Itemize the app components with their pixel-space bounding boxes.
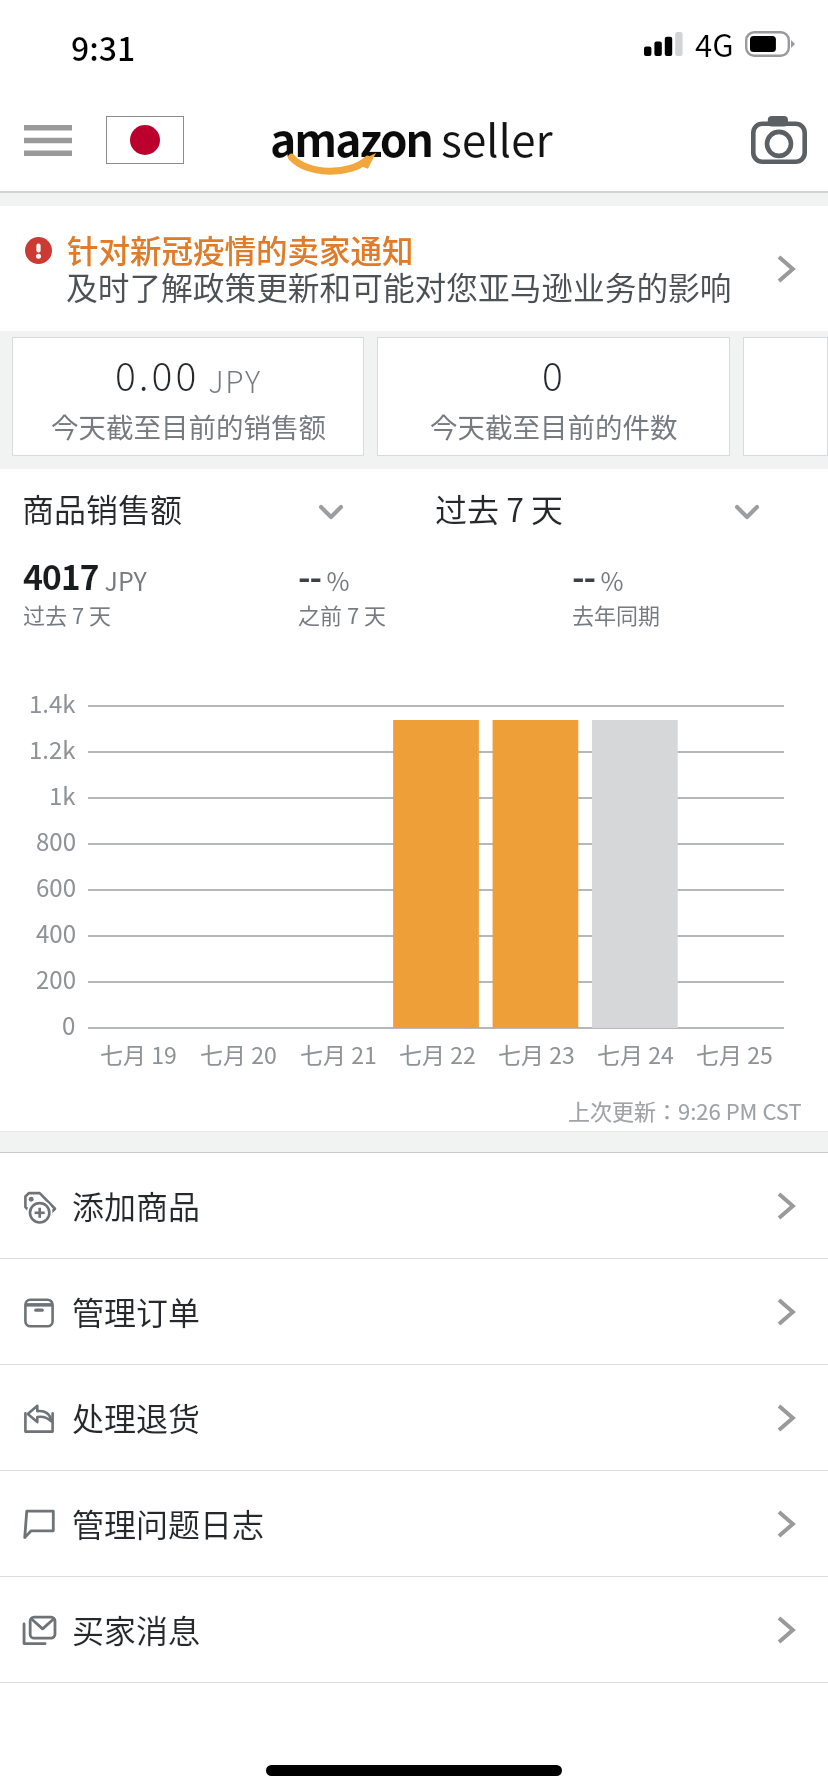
staticText: seller bbox=[441, 105, 553, 169]
staticText: -- bbox=[298, 551, 321, 600]
staticText: % bbox=[321, 562, 350, 598]
button[interactable]: 商品销售额 bbox=[0, 469, 367, 547]
staticText: 买家消息 bbox=[72, 1606, 201, 1652]
staticText: 200 bbox=[36, 961, 76, 996]
staticText: 0.00 bbox=[115, 346, 200, 402]
staticText: 处理退货 bbox=[72, 1394, 201, 1440]
staticText: 800 bbox=[36, 823, 76, 858]
staticText: 管理问题日志 bbox=[72, 1500, 265, 1546]
staticText: 管理订单 bbox=[72, 1288, 201, 1334]
staticText: 今天截至目前的销售额 bbox=[51, 406, 326, 446]
staticText: 七月 24 bbox=[597, 1037, 674, 1070]
button[interactable]: 添加商品 bbox=[0, 1153, 828, 1258]
button[interactable]: 针对新冠疫情的卖家通知 bbox=[0, 206, 828, 331]
staticText: 七月 22 bbox=[399, 1037, 476, 1070]
staticText: 之前 7 天 bbox=[298, 598, 387, 630]
staticText: 600 bbox=[36, 869, 76, 904]
staticText: 添加商品 bbox=[72, 1182, 201, 1228]
staticText: JPY bbox=[99, 562, 147, 598]
staticText: 1.2k bbox=[29, 731, 76, 766]
button[interactable] bbox=[743, 337, 828, 456]
button[interactable]: 买家消息 bbox=[0, 1577, 828, 1682]
staticText: 4G bbox=[695, 21, 734, 66]
button[interactable]: 管理订单 bbox=[0, 1259, 828, 1364]
staticText: 针对新冠疫情的卖家通知 bbox=[67, 226, 414, 272]
staticText: 过去 7 天 bbox=[23, 598, 112, 630]
button[interactable]: 0 bbox=[377, 337, 730, 456]
staticText: 去年同期 bbox=[572, 598, 661, 630]
staticText: 上次更新：9:26 PM CST bbox=[568, 1094, 802, 1126]
staticText: 9:31 bbox=[71, 24, 136, 70]
staticText: amazon bbox=[270, 105, 433, 169]
staticText: 七月 23 bbox=[498, 1037, 575, 1070]
staticText: 七月 20 bbox=[200, 1037, 277, 1070]
staticText: 1.4k bbox=[29, 685, 76, 720]
staticText: 商品销售额 bbox=[22, 485, 183, 531]
button[interactable]: Marketplace Japan bbox=[106, 116, 184, 164]
staticText: 七月 21 bbox=[300, 1037, 377, 1070]
staticText: 0 bbox=[62, 1007, 76, 1042]
button[interactable]: Menu bbox=[8, 100, 88, 180]
staticText: JPY bbox=[200, 358, 262, 401]
staticText: 0 bbox=[542, 346, 566, 402]
button[interactable]: 过去 7 天 bbox=[367, 469, 828, 547]
staticText: -- bbox=[572, 551, 595, 600]
staticText: 及时了解政策更新和可能对您亚马逊业务的影响 bbox=[66, 263, 732, 309]
staticText: 400 bbox=[36, 915, 76, 950]
staticText: 七月 19 bbox=[100, 1037, 177, 1070]
staticText: 七月 25 bbox=[696, 1037, 773, 1070]
button[interactable]: 管理问题日志 bbox=[0, 1471, 828, 1576]
staticText: 1k bbox=[49, 777, 76, 812]
button[interactable]: 处理退货 bbox=[0, 1365, 828, 1470]
button[interactable]: 0.00 bbox=[12, 337, 364, 456]
button[interactable]: Scan product bbox=[742, 103, 816, 177]
staticText: % bbox=[595, 562, 624, 598]
staticText: 今天截至目前的件数 bbox=[430, 406, 678, 446]
staticText: 过去 7 天 bbox=[435, 485, 564, 531]
staticText: 4017 bbox=[23, 551, 99, 600]
